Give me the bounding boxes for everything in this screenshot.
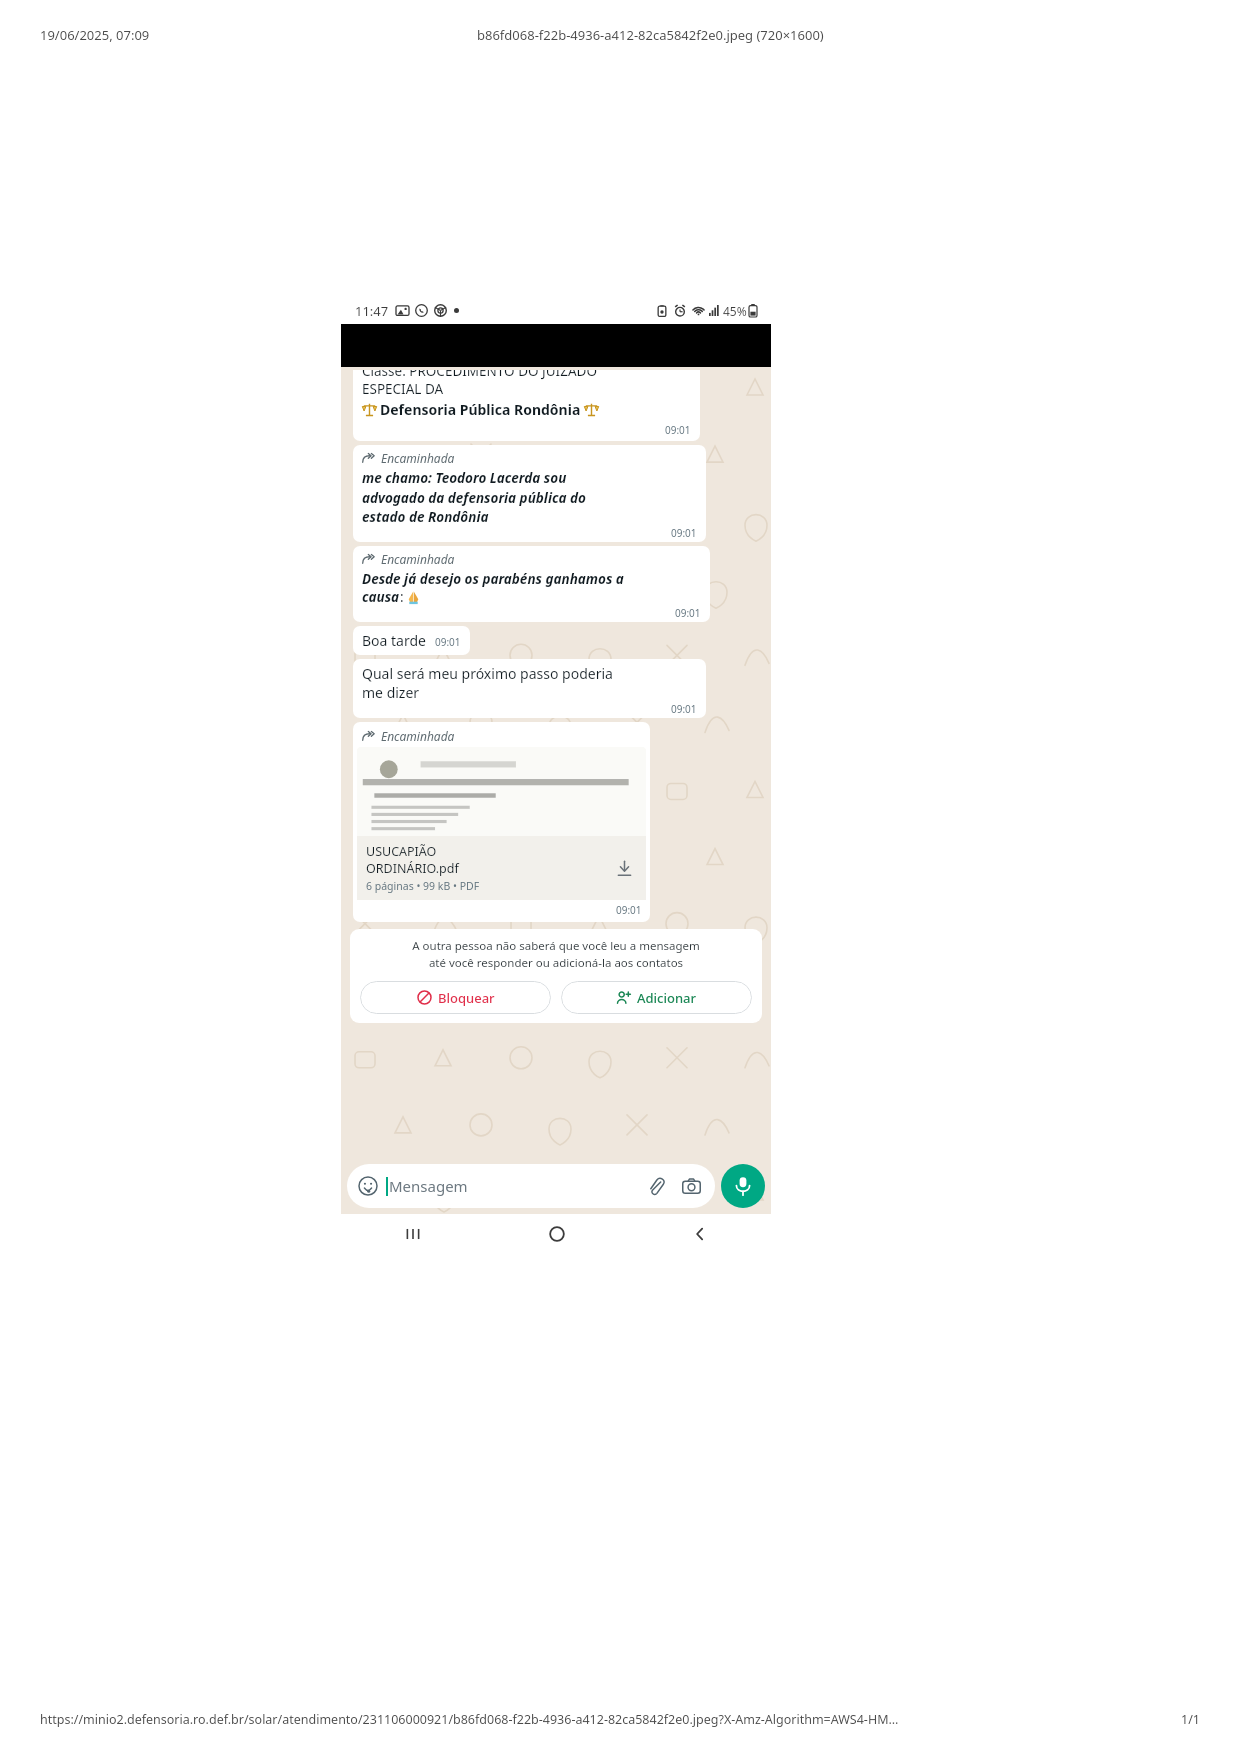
button[interactable]: Recentes	[341, 1214, 485, 1254]
button[interactable]: Gravar áudio	[721, 1164, 765, 1208]
staticText: Mensagem	[389, 1176, 468, 1196]
staticText: A outra pessoa não saberá que você leu a…	[412, 938, 700, 971]
staticText: Encaminhada	[381, 551, 455, 567]
staticText: Bloquear	[438, 989, 495, 1007]
button[interactable]: Qual será meu próximo passo poderia me d…	[353, 659, 706, 718]
button[interactable]: Classe: PROCEDIMENTO DO JUIZADO	[353, 370, 700, 441]
staticText: Classe: PROCEDIMENTO DO JUIZADO	[362, 370, 597, 380]
staticText: USUCAPIÃO ORDINÁRIO.pdf	[366, 843, 459, 876]
button[interactable]: Início	[485, 1214, 628, 1254]
staticText: causa	[362, 588, 400, 606]
staticText: 1/1	[1181, 1711, 1200, 1728]
staticText: Adicionar	[637, 989, 697, 1007]
staticText: Boa tarde	[362, 631, 426, 650]
staticText: :	[400, 588, 404, 606]
staticText: 09:01	[671, 702, 697, 716]
staticText: 09:01	[435, 635, 461, 649]
button[interactable]: Mensagem	[347, 1164, 715, 1208]
staticText: Qual será meu próximo passo poderia me d…	[362, 664, 613, 702]
button[interactable]: Encaminhada	[353, 722, 650, 922]
button[interactable]: Câmera	[678, 1173, 704, 1199]
button[interactable]: Bloquear	[360, 981, 551, 1014]
button[interactable]: Boa tarde	[353, 626, 470, 655]
staticText: 11:47	[355, 302, 389, 320]
staticText: 09:01	[665, 423, 691, 437]
staticText: 45%	[723, 303, 747, 319]
staticText: 09:01	[671, 526, 697, 540]
staticText: b86fd068-f22b-4936-a412-82ca5842f2e0.jpe…	[477, 26, 824, 44]
staticText: Desde já desejo os parabéns ganhamos a	[362, 570, 624, 588]
staticText: 09:01	[616, 903, 642, 917]
staticText: ESPECIAL DA	[362, 380, 444, 398]
button[interactable]: Voltar	[628, 1214, 771, 1254]
button[interactable]: USUCAPIÃO ORDINÁRIO.pdf	[357, 836, 646, 900]
button[interactable]: Anexar	[643, 1173, 669, 1199]
button[interactable]: Adicionar	[561, 981, 752, 1014]
button[interactable]: Encaminhada	[353, 546, 710, 622]
staticText: me chamo: Teodoro Lacerda sou advogado d…	[362, 469, 586, 526]
staticText: https://minio2.defensoria.ro.def.br/sola…	[40, 1711, 899, 1728]
button[interactable]: Baixar documento	[611, 855, 637, 881]
staticText: 09:01	[675, 606, 701, 620]
button[interactable]: Encaminhada	[353, 445, 706, 542]
staticText: Encaminhada	[381, 728, 455, 744]
staticText: Defensoria Pública Rondônia	[380, 400, 581, 419]
staticText: 6 páginas • 99 kB • PDF	[366, 879, 480, 893]
staticText: Encaminhada	[381, 450, 455, 466]
staticText: 19/06/2025, 07:09	[40, 26, 150, 44]
